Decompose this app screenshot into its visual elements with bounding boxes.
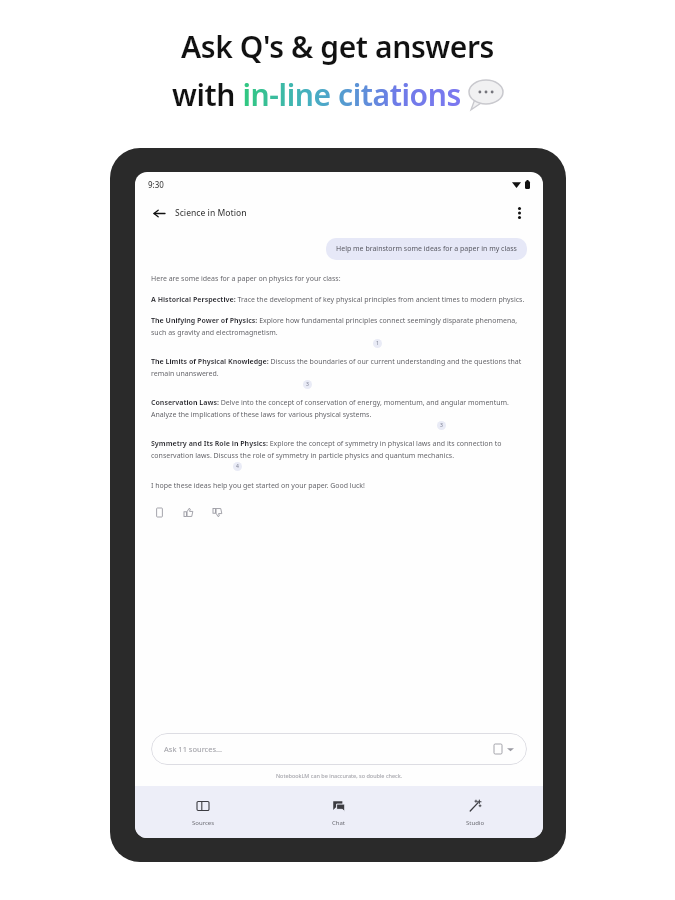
button[interactable]: Thumbs down	[209, 504, 225, 520]
button[interactable]: Sources	[135, 786, 271, 838]
staticText: Studio	[466, 819, 485, 827]
button[interactable]: Save	[151, 504, 167, 520]
button[interactable]: Citation 1	[373, 339, 382, 348]
button[interactable]: Thumbs up	[180, 504, 196, 520]
button[interactable]: More options	[509, 203, 529, 223]
staticText: 3	[440, 422, 443, 429]
button[interactable]: Citation 3	[437, 421, 446, 430]
staticText: Ask Q's & get answers	[181, 26, 494, 67]
staticText: Ask 11 sources...	[164, 744, 223, 754]
staticText: I hope these ideas help you get started …	[151, 481, 365, 491]
staticText: Conservation Laws: Delve into the concep…	[151, 398, 527, 419]
staticText: Here are some ideas for a paper on physi…	[151, 274, 341, 284]
staticText: Sources	[192, 819, 215, 827]
staticText: 4	[236, 463, 239, 470]
staticText: Science in Motion	[175, 207, 247, 219]
button[interactable]: Ask 11 sources...	[151, 733, 527, 765]
button[interactable]: Chat	[271, 786, 407, 838]
staticText: Chat	[332, 819, 346, 827]
staticText: Help me brainstorm some ideas for a pape…	[336, 244, 517, 254]
staticText: A Historical Perspective: Trace the deve…	[151, 295, 525, 305]
staticText: The Limits of Physical Knowledge: Discus…	[151, 357, 527, 378]
staticText: 1	[376, 340, 379, 347]
button[interactable]: Studio	[407, 786, 543, 838]
staticText: 3	[306, 381, 309, 388]
button[interactable]: Help me brainstorm some ideas for a pape…	[326, 238, 527, 260]
staticText: The Unifying Power of Physics: Explore h…	[151, 316, 527, 337]
staticText: with in-line citations	[172, 74, 461, 115]
staticText: Symmetry and Its Role in Physics: Explor…	[151, 439, 527, 460]
staticText: NotebookLM can be inaccurate, so double …	[135, 772, 543, 779]
button[interactable]: Citation 4	[233, 462, 242, 471]
button[interactable]: Citation 3	[303, 380, 312, 389]
button[interactable]: Back	[149, 203, 169, 223]
staticText: 9:30	[148, 179, 164, 190]
